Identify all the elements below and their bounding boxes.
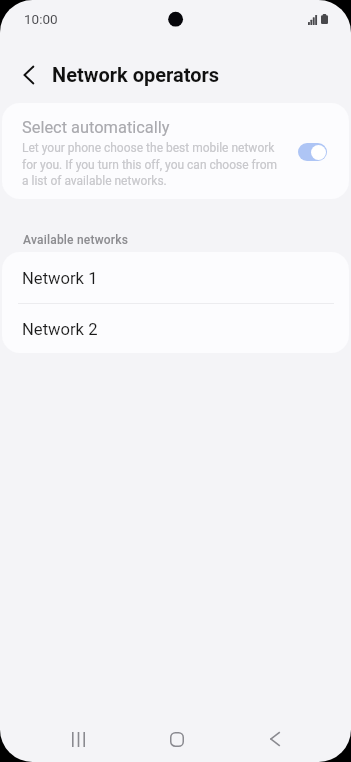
staticText: Network 2 bbox=[22, 320, 98, 339]
staticText: 10:00 bbox=[24, 11, 58, 27]
button[interactable]: Select automatically bbox=[2, 103, 349, 199]
staticText: Network operators bbox=[52, 63, 220, 86]
button[interactable]: Back bbox=[251, 715, 299, 762]
button[interactable]: Navigate up bbox=[7, 53, 51, 97]
staticText: Available networks bbox=[23, 233, 129, 247]
staticText: Let your phone choose the best mobile ne… bbox=[22, 141, 284, 188]
button[interactable]: Network 1 bbox=[2, 253, 349, 303]
staticText: Network 1 bbox=[22, 269, 98, 288]
button[interactable]: Network 2 bbox=[2, 304, 349, 353]
button[interactable]: Recent apps bbox=[54, 715, 102, 762]
staticText: Select automatically bbox=[22, 118, 170, 137]
button[interactable]: Select automatically bbox=[298, 143, 327, 161]
button[interactable]: Home bbox=[153, 715, 201, 762]
